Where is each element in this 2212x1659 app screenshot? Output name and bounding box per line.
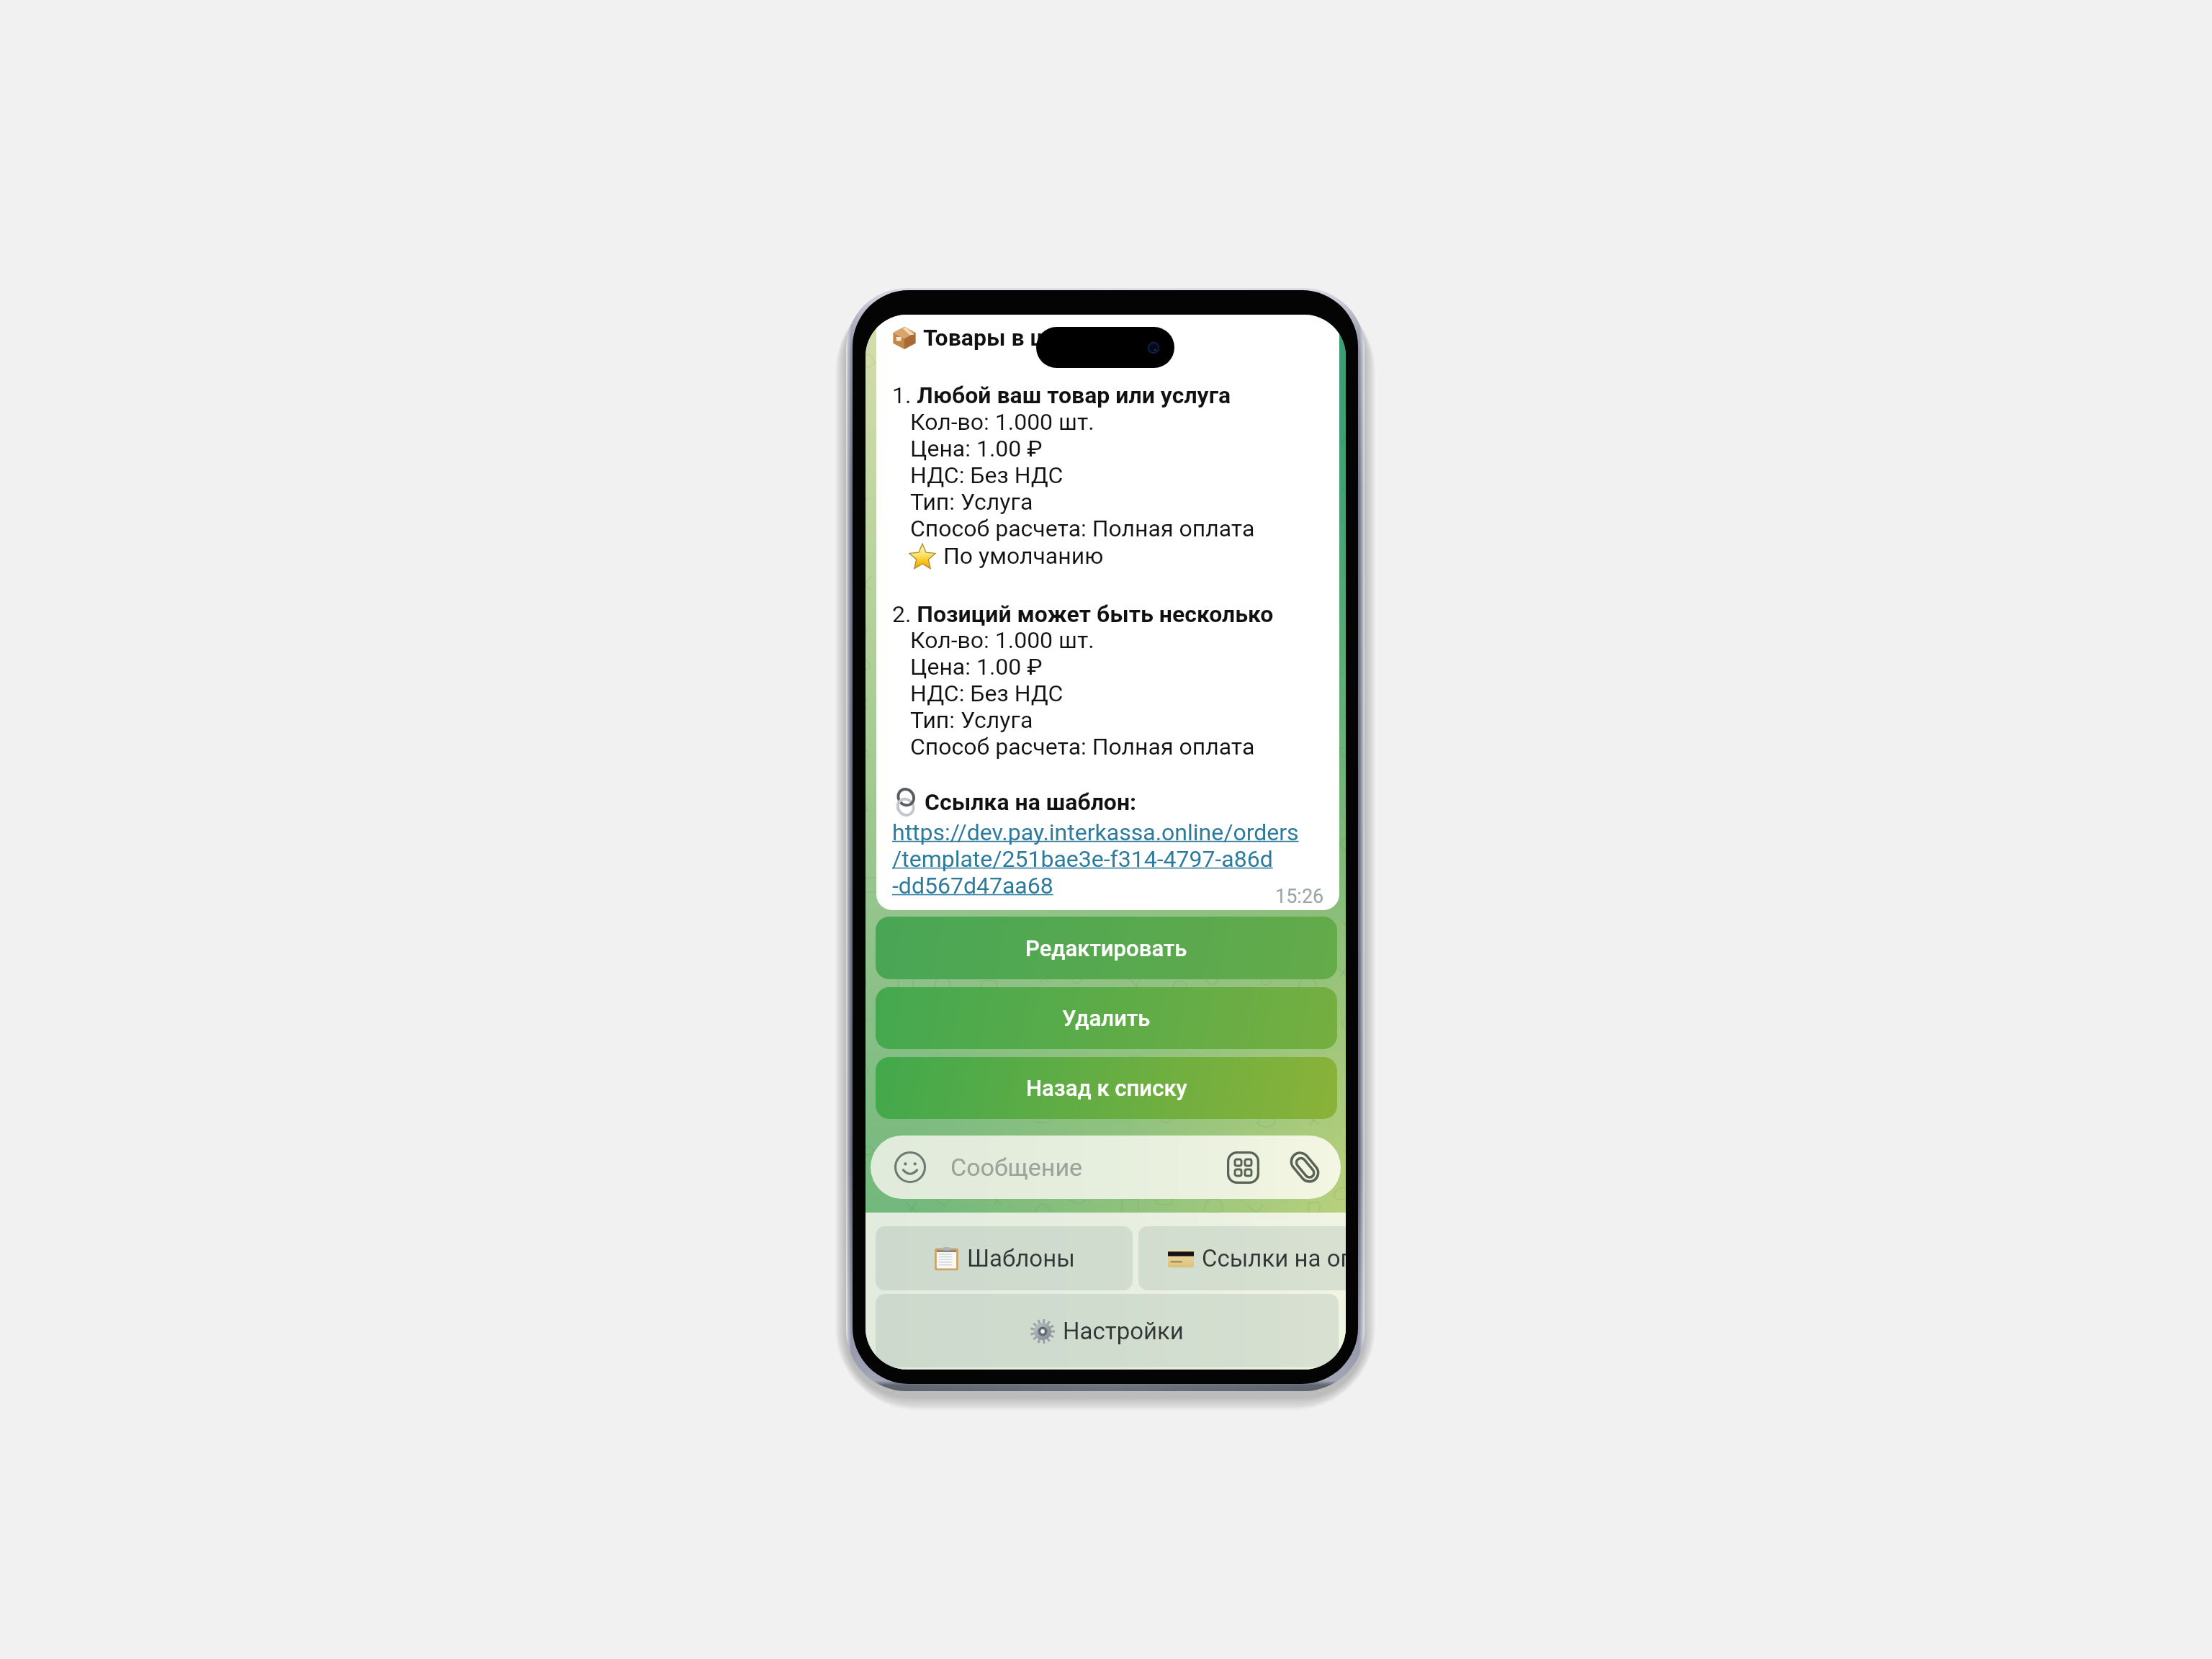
- button[interactable]: Настройки: [876, 1294, 1339, 1367]
- staticText: Кол-во: 1.000 шт. Цена: 1.00 ₽ НДС: Без …: [910, 626, 1255, 760]
- button[interactable]: Bot commands: [1227, 1151, 1259, 1184]
- staticText: 1. Любой ваш товар или услуга: [892, 382, 1231, 409]
- button[interactable]: Ссылки на опл: [1138, 1226, 1346, 1290]
- staticText: Шаблоны: [967, 1244, 1075, 1272]
- button[interactable]: Назад к списку: [876, 1057, 1337, 1119]
- button[interactable]: Emoji: [894, 1151, 927, 1184]
- button[interactable]: Удалить: [876, 987, 1337, 1049]
- staticText: Редактировать: [1025, 935, 1187, 961]
- button[interactable]: Attach: [1287, 1149, 1323, 1185]
- staticText: Ссылки на опл: [1202, 1244, 1346, 1272]
- staticText: Назад к списку: [1026, 1075, 1187, 1101]
- button[interactable]: [876, 315, 1339, 910]
- staticText: Ссылка на шаблон:: [925, 788, 1137, 816]
- staticText: Кол-во: 1.000 шт. Цена: 1.00 ₽ НДС: Без …: [910, 408, 1255, 541]
- staticText: https://dev.pay.interkassa.online/orders…: [892, 819, 1299, 899]
- button[interactable]: Шаблоны: [876, 1226, 1133, 1290]
- staticText: 2. Позиций может быть несколько: [892, 601, 1274, 628]
- staticText: Удалить: [1062, 1005, 1151, 1031]
- staticText: Товары в ш: [923, 324, 1049, 351]
- staticText: По умолчанию: [943, 542, 1104, 570]
- staticText: Сообщение: [950, 1153, 1083, 1182]
- staticText: 15:26: [1275, 885, 1324, 908]
- button[interactable]: Emoji: [871, 1136, 1341, 1199]
- staticText: Настройки: [1063, 1317, 1184, 1345]
- button[interactable]: Редактировать: [876, 917, 1337, 979]
